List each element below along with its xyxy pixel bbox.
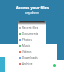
button[interactable]: Photos <box>18 37 46 43</box>
staticText: Archive <box>22 62 33 66</box>
staticText: Photos <box>22 38 32 42</box>
staticText: Recent files <box>22 26 39 30</box>
button[interactable]: Recent files <box>18 25 46 31</box>
button[interactable]: Documents <box>18 31 46 37</box>
button[interactable]: Videos <box>18 49 46 55</box>
staticText: Music <box>22 44 31 48</box>
staticText: Access your files <box>16 5 49 10</box>
button[interactable]: Archive <box>18 61 46 67</box>
button[interactable]: Downloads <box>18 55 46 61</box>
staticText: Videos <box>22 50 32 54</box>
staticText: Documents <box>22 32 39 36</box>
staticText: Downloads <box>22 56 38 60</box>
button[interactable]: Add <box>53 64 56 67</box>
staticText: anywhere <box>25 11 39 15</box>
button[interactable]: Music <box>18 43 46 49</box>
